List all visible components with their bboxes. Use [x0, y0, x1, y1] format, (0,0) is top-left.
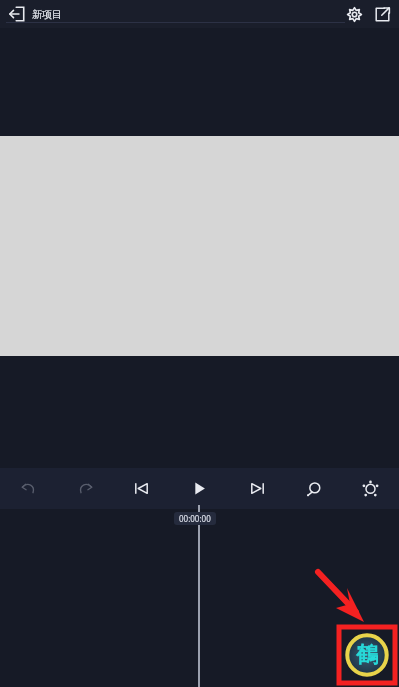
- button[interactable]: Redo: [69, 472, 101, 504]
- button[interactable]: Settings: [342, 2, 366, 26]
- staticText: 00:00:00: [179, 513, 211, 524]
- button[interactable]: Watermark logo: [338, 626, 396, 684]
- button[interactable]: Skip to start: [125, 472, 157, 504]
- button[interactable]: Fit to screen: [354, 472, 386, 504]
- button[interactable]: Play: [183, 472, 215, 504]
- button[interactable]: Undo: [12, 472, 44, 504]
- button[interactable]: Export: [370, 2, 394, 26]
- staticText: 鶴: [356, 641, 378, 669]
- button[interactable]: Skip to end: [241, 472, 273, 504]
- staticText: 新项目: [32, 8, 62, 21]
- button[interactable]: Back: [4, 1, 30, 27]
- button[interactable]: 00:00:00: [179, 513, 211, 524]
- button[interactable]: Loop: [298, 472, 330, 504]
